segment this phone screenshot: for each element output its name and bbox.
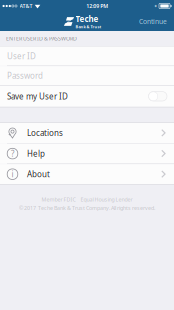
staticText: Save my User ID bbox=[7, 91, 68, 102]
staticText: Continue bbox=[139, 17, 167, 26]
staticText: ✶ bbox=[154, 4, 157, 8]
button[interactable]: Continue bbox=[132, 12, 174, 31]
staticText: ENTER USER ID & PASSWORD bbox=[6, 35, 77, 42]
staticText: 12:09 PM bbox=[86, 2, 108, 10]
button[interactable]: ? bbox=[0, 144, 174, 164]
staticText: © 2017 Teche Bank & Trust Company. All r… bbox=[19, 204, 155, 211]
staticText: Password bbox=[7, 70, 43, 81]
staticText: Bank & Trust bbox=[75, 24, 101, 29]
staticText: AT&T bbox=[19, 2, 32, 10]
staticText: Teche bbox=[75, 13, 98, 24]
button[interactable]: Save my User ID bbox=[0, 86, 174, 107]
staticText: i bbox=[11, 169, 13, 179]
button[interactable]: User ID bbox=[0, 47, 174, 66]
button[interactable]: Password bbox=[0, 66, 174, 85]
button[interactable]: i bbox=[0, 164, 174, 184]
staticText: About bbox=[27, 169, 50, 179]
staticText: ? bbox=[11, 148, 14, 159]
staticText: Member FDIC Equal Housing Lender bbox=[41, 196, 132, 203]
staticText: Help bbox=[27, 148, 45, 159]
staticText: User ID bbox=[7, 51, 36, 61]
staticText: Locations bbox=[27, 128, 63, 138]
button[interactable]: Locations bbox=[0, 123, 174, 143]
